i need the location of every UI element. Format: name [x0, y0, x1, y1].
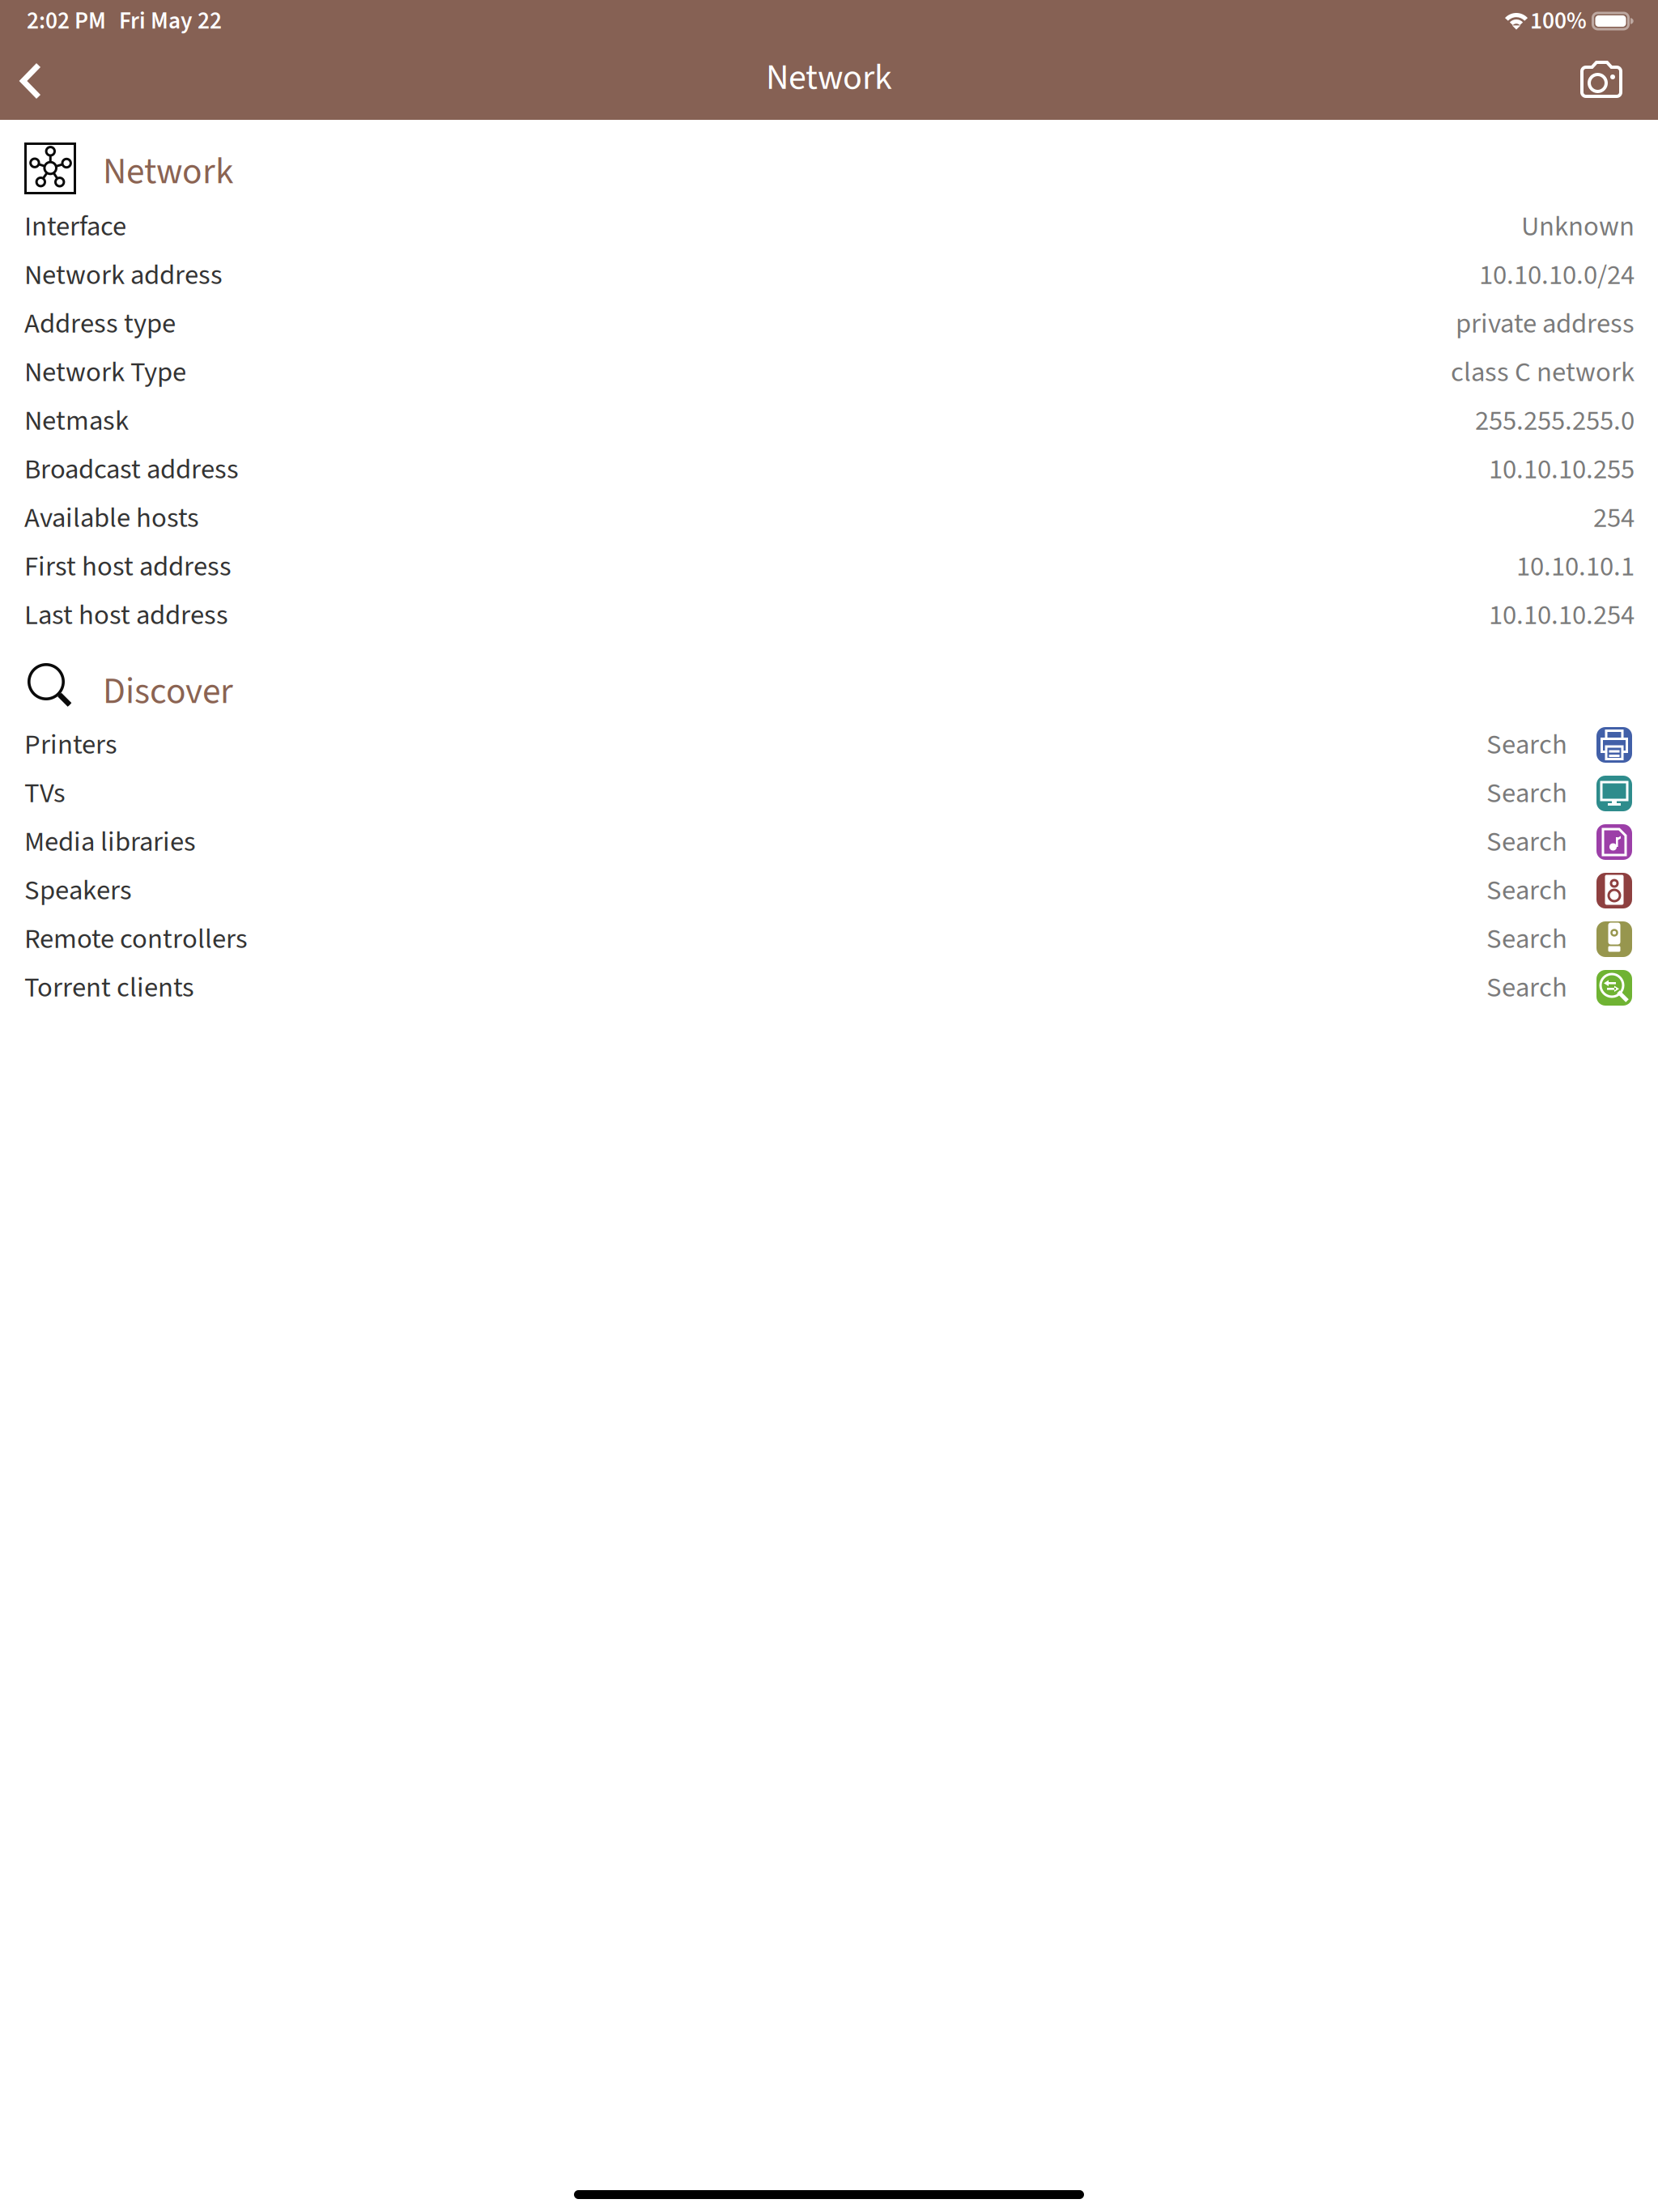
staticText: Address type [24, 304, 176, 344]
staticText: Network address [24, 255, 223, 295]
button[interactable]: Media libraries [0, 818, 1658, 866]
staticText: Last host address [24, 595, 228, 635]
staticText: Interface [24, 207, 126, 247]
staticText: Netmask [24, 401, 129, 441]
staticText: Broadcast address [24, 450, 239, 490]
staticText: Discover [103, 665, 233, 718]
staticText: Unknown [1521, 207, 1635, 247]
staticText: Search [1486, 871, 1567, 911]
button[interactable]: Back [0, 42, 62, 120]
staticText: Search [1486, 822, 1567, 862]
staticText: Available hosts [24, 498, 199, 538]
button[interactable]: Torrent clients [0, 963, 1658, 1012]
button[interactable]: Printers [0, 721, 1658, 769]
staticText: Torrent clients [24, 968, 194, 1008]
staticText: Media libraries [24, 822, 196, 862]
staticText: private address [1456, 304, 1635, 344]
staticText: TVs [24, 773, 66, 813]
staticText: Search [1486, 968, 1567, 1008]
staticText: Remote controllers [24, 919, 248, 959]
staticText: Search [1486, 773, 1567, 813]
staticText: 10.10.10.1 [1516, 547, 1635, 587]
button[interactable]: TVs [0, 769, 1658, 818]
staticText: Printers [24, 725, 117, 765]
staticText: class C network [1451, 352, 1635, 392]
staticText: Fri May 22 [119, 4, 222, 38]
staticText: 2:02 PM [27, 4, 106, 38]
staticText: First host address [24, 547, 232, 587]
staticText: Search [1486, 725, 1567, 765]
staticText: 255.255.255.0 [1475, 401, 1635, 441]
staticText: Speakers [24, 871, 132, 911]
staticText: Network Type [24, 352, 186, 392]
staticText: 100% [1530, 4, 1587, 38]
button[interactable]: Speakers [0, 866, 1658, 915]
staticText: Network [766, 52, 892, 103]
staticText: 10.10.10.254 [1489, 595, 1635, 635]
button[interactable]: Camera [1580, 42, 1658, 120]
button[interactable]: Remote controllers [0, 915, 1658, 963]
staticText: Search [1486, 919, 1567, 959]
staticText: Network [103, 145, 233, 198]
staticText: 254 [1593, 498, 1635, 538]
staticText: 10.10.10.0/24 [1479, 255, 1635, 295]
staticText: 10.10.10.255 [1489, 450, 1635, 490]
